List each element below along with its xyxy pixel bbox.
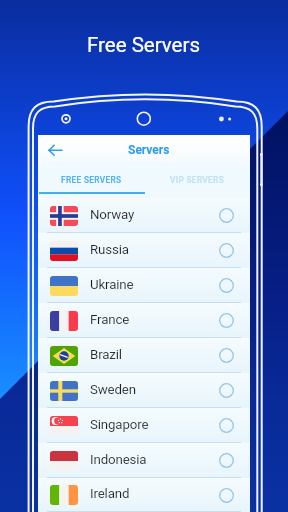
staticText: Ukraine — [90, 277, 134, 293]
staticText: Servers — [128, 143, 170, 157]
button[interactable]: Ukraine — [38, 268, 250, 303]
button[interactable]: Indonesia — [38, 443, 250, 478]
staticText: Singapore — [90, 417, 149, 433]
button[interactable]: FREE SERVERS — [38, 165, 144, 198]
staticText: Brazil — [90, 347, 122, 363]
button[interactable]: Singapore — [38, 408, 250, 443]
staticText: Indonesia — [90, 452, 147, 468]
staticText: Norway — [90, 207, 135, 223]
staticText: VIP SERVERS — [170, 175, 224, 185]
staticText: Ireland — [90, 486, 130, 502]
button[interactable]: Sweden — [38, 373, 250, 408]
staticText: Free Servers — [87, 33, 201, 57]
button[interactable]: Brazil — [38, 338, 250, 373]
staticText: Russia — [90, 242, 129, 258]
staticText: FREE SERVERS — [61, 175, 122, 185]
button[interactable]: France — [38, 303, 250, 338]
staticText: France — [90, 312, 130, 328]
button[interactable]: Russia — [38, 233, 250, 268]
button[interactable]: Ireland — [38, 478, 250, 512]
staticText: Sweden — [90, 382, 136, 398]
button[interactable]: Norway — [38, 198, 250, 233]
button[interactable]: VIP SERVERS — [144, 165, 250, 198]
button[interactable]: Back — [41, 139, 63, 161]
